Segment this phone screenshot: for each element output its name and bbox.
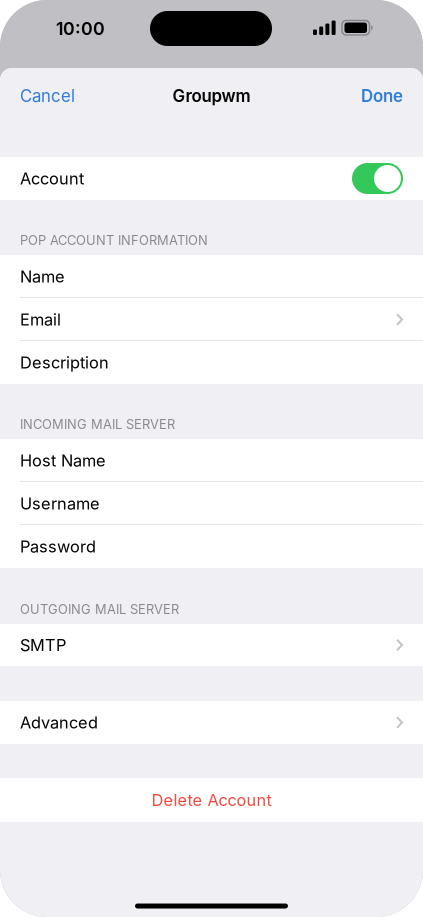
staticText: Account (20, 169, 84, 188)
staticText: 10:00 (56, 18, 105, 39)
button[interactable]: Description (0, 341, 423, 384)
button[interactable]: Account (0, 157, 423, 200)
staticText: Username (20, 494, 100, 513)
button[interactable]: Delete Account (0, 778, 423, 822)
staticText: Host Name (20, 451, 106, 470)
button[interactable]: Cancel (0, 72, 95, 120)
staticText: Delete Account (151, 790, 271, 810)
staticText: SMTP (20, 635, 66, 655)
button[interactable]: Host Name (0, 439, 423, 482)
staticText: Email (20, 310, 61, 329)
staticText: Advanced (20, 713, 98, 732)
staticText: Groupwm (172, 86, 250, 106)
button[interactable]: Name (0, 255, 423, 298)
staticText: POP ACCOUNT INFORMATION (20, 232, 208, 248)
staticText: Description (20, 353, 109, 372)
staticText: Done (361, 86, 403, 106)
button[interactable]: Password (0, 525, 423, 568)
staticText: INCOMING MAIL SERVER (20, 416, 175, 432)
button[interactable]: Email (0, 298, 423, 341)
staticText: Name (20, 267, 65, 286)
button[interactable]: Username (0, 482, 423, 525)
button[interactable]: Advanced (0, 701, 423, 744)
button[interactable]: SMTP (0, 624, 423, 666)
button[interactable]: Done (341, 72, 423, 120)
staticText: Cancel (20, 86, 75, 106)
staticText: Password (20, 537, 96, 556)
staticText: OUTGOING MAIL SERVER (20, 601, 179, 617)
